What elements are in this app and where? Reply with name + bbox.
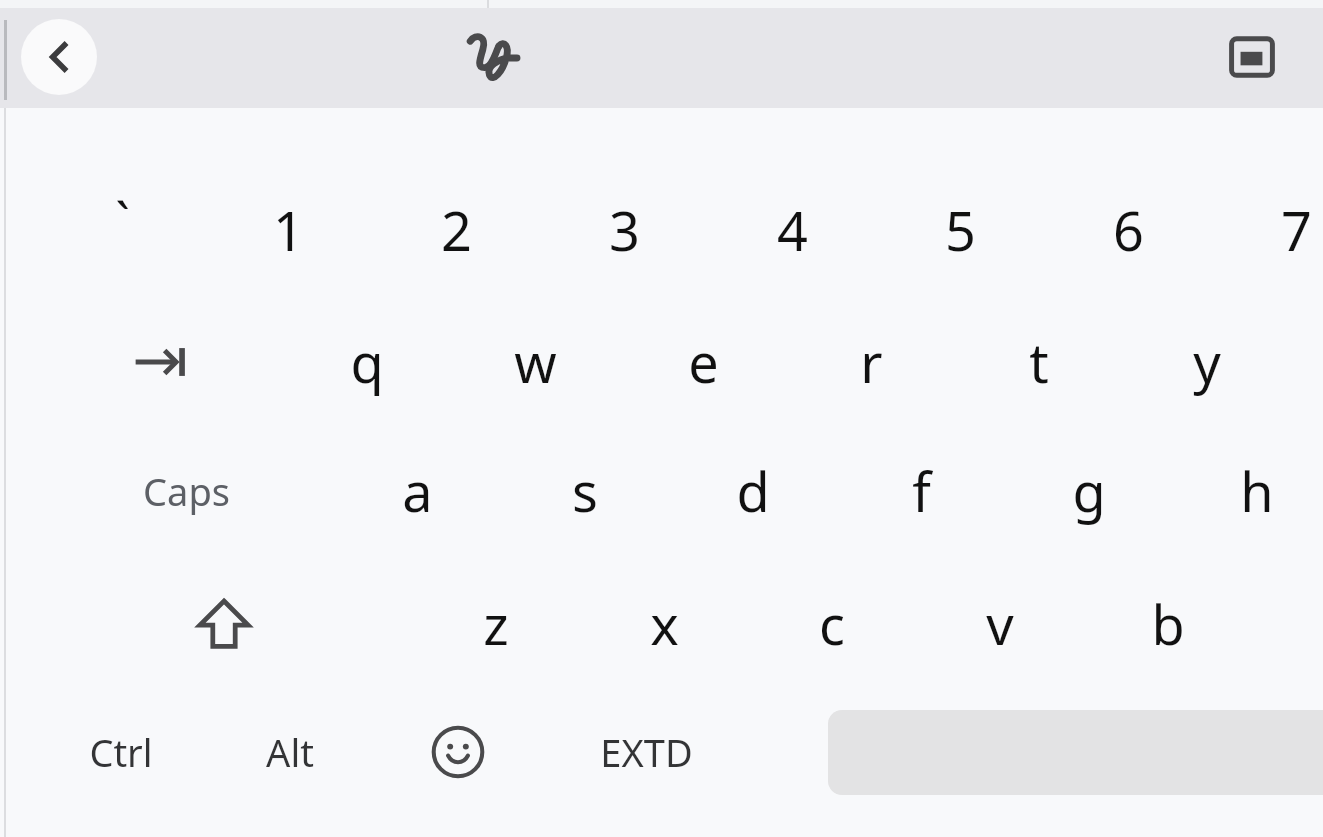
button[interactable]: 5: [0, 0, 150, 118]
button[interactable]: s: [0, 0, 150, 118]
staticText: s: [572, 454, 598, 528]
staticText: 6: [1113, 193, 1144, 267]
staticText: Ctrl: [89, 726, 153, 778]
button[interactable]: r: [0, 0, 150, 118]
staticText: a: [402, 454, 433, 528]
staticText: v: [986, 587, 1014, 661]
button[interactable]: f: [0, 0, 150, 118]
button[interactable]: x: [0, 0, 150, 118]
button[interactable]: b: [0, 0, 150, 118]
button[interactable]: v: [0, 0, 150, 118]
staticText: x: [650, 587, 679, 661]
button[interactable]: g: [0, 0, 150, 118]
button[interactable]: 2: [0, 0, 150, 118]
button[interactable]: Floating keyboard: [0, 0, 84, 84]
staticText: h: [1240, 454, 1274, 528]
button[interactable]: EXTD: [0, 0, 200, 118]
button[interactable]: 6: [0, 0, 150, 118]
staticText: Caps: [143, 465, 230, 517]
staticText: 7: [1281, 193, 1312, 267]
staticText: z: [483, 587, 509, 661]
button[interactable]: 3: [0, 0, 150, 118]
staticText: d: [736, 454, 770, 528]
staticText: f: [912, 454, 931, 528]
staticText: 3: [609, 193, 640, 267]
button[interactable]: Caps: [0, 0, 190, 118]
button[interactable]: 7: [0, 0, 150, 118]
button[interactable]: e: [0, 0, 150, 118]
staticText: c: [819, 587, 845, 661]
staticText: b: [1151, 587, 1185, 661]
button[interactable]: t: [0, 0, 150, 118]
button[interactable]: y: [0, 0, 150, 118]
button[interactable]: Emoji: [0, 0, 130, 118]
staticText: w: [514, 325, 557, 399]
button[interactable]: c: [0, 0, 150, 118]
staticText: r: [860, 325, 883, 399]
button[interactable]: Shift: [0, 0, 150, 118]
staticText: 4: [777, 193, 808, 267]
staticText: g: [1072, 454, 1106, 528]
staticText: EXTD: [600, 726, 693, 778]
staticText: e: [688, 325, 719, 399]
button[interactable]: h: [0, 0, 150, 118]
button[interactable]: Ctrl: [0, 0, 170, 118]
staticText: 2: [441, 193, 472, 267]
button[interactable]: 4: [0, 0, 150, 118]
button[interactable]: a: [0, 0, 150, 118]
staticText: q: [350, 325, 384, 399]
button[interactable]: 1: [0, 0, 150, 118]
staticText: Alt: [266, 726, 314, 778]
button[interactable]: Handwriting input: [0, 0, 86, 86]
staticText: 5: [945, 193, 976, 267]
staticText: t: [1029, 325, 1049, 399]
button[interactable]: Tab: [0, 0, 150, 118]
staticText: `: [115, 185, 130, 256]
button[interactable]: q: [0, 0, 150, 118]
button[interactable]: `: [0, 0, 150, 118]
button[interactable]: z: [0, 0, 150, 118]
button[interactable]: w: [0, 0, 150, 118]
button[interactable]: Alt: [0, 0, 150, 118]
button[interactable]: Back: [21, 19, 97, 95]
staticText: y: [1193, 325, 1221, 399]
button[interactable]: d: [0, 0, 150, 118]
staticText: 1: [273, 193, 304, 267]
